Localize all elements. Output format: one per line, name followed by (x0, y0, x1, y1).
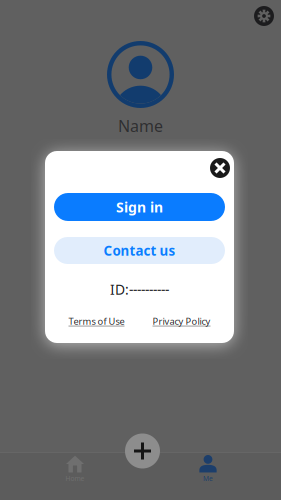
button[interactable]: Privacy Policy (152, 315, 210, 328)
staticText: ID:---------- (110, 280, 169, 299)
button[interactable]: Home (45, 452, 105, 500)
button[interactable]: Sign in (54, 193, 225, 221)
staticText: Name (118, 115, 163, 137)
button[interactable]: Settings (246, 0, 281, 34)
staticText: Me (203, 474, 213, 483)
button[interactable]: Add (120, 431, 160, 471)
button[interactable]: Terms of Use (68, 315, 124, 328)
staticText: Contact us (103, 241, 175, 260)
staticText: Sign in (116, 197, 163, 217)
button[interactable]: Contact us (54, 237, 225, 264)
staticText: Home (65, 474, 84, 483)
button[interactable]: Close (210, 155, 234, 178)
staticText: Terms of Use (68, 315, 124, 328)
staticText: Privacy Policy (152, 315, 210, 328)
button[interactable]: Me (178, 452, 238, 500)
